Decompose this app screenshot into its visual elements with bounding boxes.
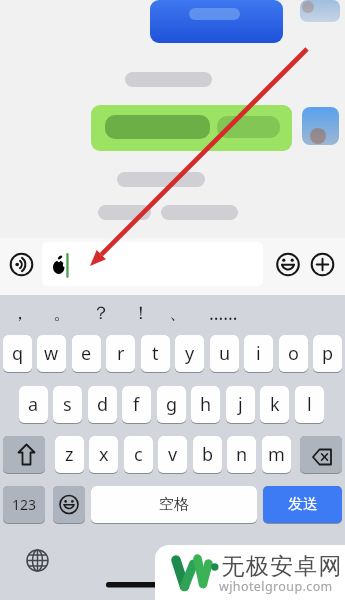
button[interactable]: y xyxy=(175,335,204,372)
button[interactable] xyxy=(24,547,51,574)
button[interactable]: s xyxy=(53,386,82,423)
staticText: ？ xyxy=(92,302,110,325)
button[interactable]: d xyxy=(88,386,117,423)
staticText: l xyxy=(307,392,312,417)
staticText: …… xyxy=(209,301,238,326)
button[interactable]: …… xyxy=(206,300,240,326)
button[interactable]: h xyxy=(191,386,220,423)
button[interactable] xyxy=(3,436,45,473)
staticText: n xyxy=(236,442,248,467)
button[interactable] xyxy=(8,251,35,278)
staticText: s xyxy=(63,392,72,417)
button[interactable]: ！ xyxy=(124,300,158,326)
button[interactable]: n xyxy=(227,436,256,473)
button[interactable]: e xyxy=(72,335,101,372)
button[interactable]: q xyxy=(3,335,32,372)
button[interactable]: k xyxy=(260,386,289,423)
staticText: ， xyxy=(11,302,29,325)
staticText: j xyxy=(238,392,243,417)
button[interactable] xyxy=(53,486,85,523)
button[interactable]: g xyxy=(157,386,186,423)
button[interactable]: z xyxy=(55,436,84,473)
button[interactable]: o xyxy=(279,335,308,372)
staticText: i xyxy=(256,341,261,366)
button[interactable]: p xyxy=(313,335,342,372)
button[interactable]: t xyxy=(141,335,170,372)
staticText: g xyxy=(166,392,178,417)
button[interactable]: 123 xyxy=(3,486,45,523)
staticText: 。 xyxy=(53,302,71,325)
button[interactable]: m xyxy=(262,436,291,473)
staticText: q xyxy=(12,341,24,366)
button[interactable]: i xyxy=(244,335,273,372)
staticText: v xyxy=(168,442,178,467)
staticText: a xyxy=(28,392,39,417)
staticText: 123 xyxy=(12,495,37,514)
staticText: r xyxy=(117,341,125,366)
button[interactable]: r xyxy=(106,335,135,372)
button[interactable]: b xyxy=(193,436,222,473)
staticText: ！ xyxy=(132,302,150,325)
button[interactable]: 、 xyxy=(161,300,195,326)
button[interactable]: u xyxy=(210,335,239,372)
staticText: z xyxy=(65,442,74,467)
staticText: m xyxy=(268,442,285,467)
button[interactable]: l xyxy=(295,386,324,423)
button[interactable]: 发送 xyxy=(263,486,342,523)
staticText: e xyxy=(81,341,92,366)
button[interactable]: a xyxy=(19,386,48,423)
staticText: c xyxy=(134,442,143,467)
staticText: h xyxy=(200,392,212,417)
staticText: 空格 xyxy=(159,495,189,514)
staticText: w xyxy=(44,341,59,366)
staticText: 无极安卓网 xyxy=(221,552,342,581)
button[interactable]: c xyxy=(124,436,153,473)
staticText: x xyxy=(99,442,109,467)
staticText: u xyxy=(219,341,231,366)
button[interactable]: ？ xyxy=(84,300,118,326)
staticText: f xyxy=(133,392,140,417)
button[interactable]: 空格 xyxy=(91,486,257,523)
staticText: wjhotelgroup.com xyxy=(219,578,333,595)
button[interactable] xyxy=(42,242,263,286)
staticText: k xyxy=(270,392,280,417)
staticText: t xyxy=(152,341,159,366)
staticText: b xyxy=(202,442,214,467)
button[interactable] xyxy=(309,251,336,278)
button[interactable]: 。 xyxy=(45,300,79,326)
staticText: y xyxy=(185,341,195,366)
button[interactable]: ， xyxy=(3,300,37,326)
staticText: o xyxy=(288,341,299,366)
staticText: d xyxy=(97,392,109,417)
staticText: 发送 xyxy=(288,495,318,514)
staticText: 、 xyxy=(169,302,187,325)
button[interactable]: w xyxy=(37,335,66,372)
staticText: p xyxy=(322,341,334,366)
button[interactable]: v xyxy=(158,436,187,473)
button[interactable] xyxy=(300,436,342,473)
button[interactable]: x xyxy=(89,436,118,473)
button[interactable]: f xyxy=(122,386,151,423)
button[interactable]: j xyxy=(226,386,255,423)
button[interactable] xyxy=(274,251,301,278)
